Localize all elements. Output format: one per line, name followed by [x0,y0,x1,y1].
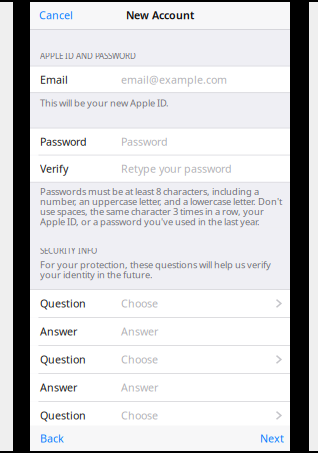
button[interactable]: Answer [30,318,290,345]
button[interactable]: Answer [30,374,290,401]
staticText: Passwords must be at least 8 characters,… [40,185,282,228]
staticText: Answer [121,324,158,339]
button[interactable]: Back [30,425,74,451]
staticText: Next [260,431,284,445]
staticText: Answer [121,380,158,395]
button[interactable]: Password [30,128,290,155]
button[interactable]: Cancel [30,0,82,30]
button[interactable]: Verify [30,155,290,182]
staticText: Choose [121,296,158,311]
staticText: APPLE ID AND PASSWORD [40,50,136,61]
button[interactable]: Question [30,402,290,429]
staticText: Verify [40,162,68,176]
button[interactable]: Question [30,290,290,317]
staticText: SECURITY INFO [40,245,97,256]
staticText: Password [121,135,168,149]
staticText: Question [40,296,86,311]
staticText: Retype your password [121,162,232,176]
staticText: Question [40,408,86,423]
staticText: New Account [126,8,194,22]
staticText: Question [40,352,86,367]
button[interactable]: Email [30,66,290,92]
staticText: This will be your new Apple ID. [40,97,169,109]
staticText: For your protection, these questions wil… [40,258,271,281]
button[interactable]: Question [30,346,290,373]
staticText: Answer [40,380,77,395]
staticText: Choose [121,352,158,367]
staticText: Email [40,72,68,87]
staticText: Back [40,431,64,445]
staticText: Choose [121,408,158,423]
button[interactable]: Next [254,425,290,451]
staticText: email@example.com [121,72,227,87]
staticText: Cancel [39,8,73,22]
staticText: Password [40,135,87,149]
staticText: Answer [40,324,77,339]
